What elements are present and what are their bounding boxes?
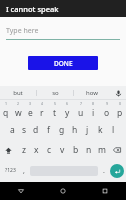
button[interactable]: DONE xyxy=(28,56,98,70)
staticText: w xyxy=(15,107,22,119)
staticText: u xyxy=(78,107,84,119)
staticText: e xyxy=(28,107,33,119)
button[interactable]: 8 xyxy=(87,100,100,120)
staticText: a xyxy=(10,124,15,136)
staticText: 4 xyxy=(41,101,44,106)
staticText: b xyxy=(73,144,79,156)
staticText: 8 xyxy=(92,101,95,106)
staticText: m xyxy=(98,144,106,156)
staticText: d xyxy=(33,124,39,136)
button[interactable]: g xyxy=(55,120,68,140)
button[interactable]: b xyxy=(69,140,82,160)
staticText: g xyxy=(59,124,65,136)
button[interactable]: 0 xyxy=(113,100,126,120)
button[interactable]: d xyxy=(30,120,42,140)
button[interactable]: l xyxy=(107,120,120,140)
button[interactable]: n xyxy=(82,140,95,160)
staticText: 7 xyxy=(80,101,83,106)
staticText: ?123 xyxy=(5,167,16,174)
button[interactable]: Comma xyxy=(20,160,28,181)
staticText: k xyxy=(98,124,103,136)
button[interactable]: 4 xyxy=(36,100,48,120)
button[interactable]: 7 xyxy=(74,100,87,120)
button[interactable]: Period xyxy=(100,160,108,181)
button[interactable]: h xyxy=(68,120,81,140)
staticText: DONE xyxy=(54,59,73,68)
button[interactable]: ?123 xyxy=(2,160,18,181)
staticText: , xyxy=(23,166,25,176)
button[interactable]: x xyxy=(30,140,43,160)
staticText: x xyxy=(34,144,39,156)
button[interactable]: so xyxy=(37,86,73,100)
button[interactable]: 3 xyxy=(24,100,36,120)
staticText: p xyxy=(117,107,123,119)
staticText: 2 xyxy=(17,101,20,106)
staticText: h xyxy=(72,124,78,136)
staticText: 0 xyxy=(119,101,122,106)
staticText: f xyxy=(47,124,50,136)
staticText: I cannot speak xyxy=(6,4,59,14)
staticText: how xyxy=(86,89,98,97)
staticText: t xyxy=(53,107,57,119)
staticText: y xyxy=(65,107,70,119)
button[interactable]: Home xyxy=(42,182,84,200)
staticText: z xyxy=(22,144,26,156)
button[interactable]: Voice input xyxy=(110,86,126,100)
button[interactable]: how xyxy=(74,86,110,100)
button[interactable]: Type here xyxy=(6,26,120,40)
staticText: o xyxy=(104,107,110,119)
button[interactable]: k xyxy=(94,120,107,140)
staticText: j xyxy=(86,124,89,136)
button[interactable]: Enter xyxy=(110,164,124,178)
staticText: 5 xyxy=(54,101,57,106)
staticText: 1 xyxy=(5,101,8,106)
button[interactable]: Recents xyxy=(84,182,126,200)
button[interactable]: v xyxy=(56,140,69,160)
button[interactable]: Shift xyxy=(0,140,17,160)
button[interactable]: f xyxy=(42,120,55,140)
button[interactable]: but xyxy=(0,86,36,100)
button[interactable]: z xyxy=(17,140,30,160)
staticText: l xyxy=(112,124,115,136)
staticText: n xyxy=(86,144,92,156)
button[interactable]: 9 xyxy=(100,100,113,120)
staticText: but xyxy=(13,89,23,97)
button[interactable]: c xyxy=(43,140,56,160)
staticText: v xyxy=(60,144,65,156)
button[interactable]: s xyxy=(18,120,30,140)
staticText: 9 xyxy=(106,101,109,106)
button[interactable]: a xyxy=(6,120,18,140)
button[interactable]: 6 xyxy=(61,100,74,120)
staticText: . xyxy=(103,166,105,176)
button[interactable]: Backspace xyxy=(108,140,126,160)
staticText: q xyxy=(3,107,9,119)
staticText: 3 xyxy=(29,101,32,106)
button[interactable]: 1 xyxy=(0,100,12,120)
button[interactable]: Back xyxy=(0,182,42,200)
staticText: r xyxy=(40,107,44,119)
button[interactable]: j xyxy=(81,120,94,140)
staticText: i xyxy=(92,107,95,119)
button[interactable]: I cannot speak xyxy=(0,0,126,17)
button[interactable]: m xyxy=(95,140,108,160)
staticText: s xyxy=(22,124,27,136)
staticText: 6 xyxy=(66,101,69,106)
staticText: Type here xyxy=(6,26,39,36)
staticText: c xyxy=(47,144,52,156)
staticText: so xyxy=(52,89,59,97)
button[interactable]: 5 xyxy=(48,100,61,120)
button[interactable]: 2 xyxy=(12,100,24,120)
